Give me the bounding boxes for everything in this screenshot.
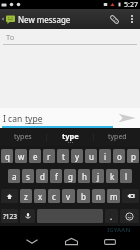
staticText: I can [3,113,25,125]
button[interactable]: . [105,209,118,223]
staticText: x [38,191,43,202]
button[interactable]: i [99,149,111,163]
staticText: To [6,32,15,42]
button[interactable]: f [50,169,62,183]
staticText: y [75,151,80,162]
staticText: w [18,151,25,162]
staticText: g [68,171,73,182]
staticText: c [52,191,56,202]
staticText: q [5,151,10,162]
staticText: a [12,171,17,182]
staticText: ?123 [3,212,17,221]
button[interactable]: b [77,189,90,203]
button[interactable]: e [29,149,41,163]
staticText: e [33,151,38,162]
button[interactable]: ?123 [1,209,18,223]
button[interactable]: x [34,189,46,203]
staticText: New message [18,14,71,25]
staticText: f [55,171,58,182]
button[interactable] [0,9,18,29]
button[interactable]: u [85,149,97,163]
button[interactable]: v [62,189,75,203]
button[interactable]: t [57,149,69,163]
button[interactable]: a [8,169,20,183]
button[interactable]: Send [113,108,140,128]
staticText: z [24,191,28,202]
staticText: types [14,132,32,142]
staticText: h [82,171,87,182]
staticText: . [110,211,113,222]
staticText: v [66,191,71,202]
button[interactable]: p [127,149,139,163]
button[interactable]: typed [94,128,140,146]
staticText: typed [108,132,127,142]
staticText: i [104,151,107,162]
staticText: r [47,151,51,162]
staticText: j [97,171,100,182]
staticText: t [62,151,65,162]
button[interactable]: y [71,149,83,163]
staticText: m [110,191,118,202]
button[interactable]: w [15,149,27,163]
staticText: d [40,171,45,182]
button[interactable]: l [120,169,132,183]
button[interactable]: k [106,169,118,183]
staticText: k [110,171,115,182]
staticText: s [26,171,30,182]
staticText: p [131,151,136,162]
button[interactable]: To [0,29,140,44]
button[interactable]: g [64,169,76,183]
staticText: l [125,171,128,182]
button[interactable]: m [107,189,120,203]
staticText: type [25,113,43,125]
staticText: n [96,191,101,202]
button[interactable]: z [20,189,32,203]
button[interactable]: Attach [105,9,123,29]
staticText: b [81,191,86,202]
button[interactable]: r [43,149,55,163]
button[interactable]: n [92,189,105,203]
button[interactable]: j [92,169,104,183]
button[interactable]: Back [0,226,52,250]
staticText: type [62,131,79,141]
button[interactable]: h [78,169,90,183]
button[interactable]: d [36,169,48,183]
button[interactable]: Voice input [20,209,35,223]
button[interactable]: o [113,149,125,163]
button[interactable]: s [22,169,34,183]
staticText: IGYAAN [107,226,131,234]
button[interactable]: I can [0,108,113,126]
button[interactable]: Home [52,226,90,250]
button[interactable]: Recents [90,226,140,250]
button[interactable]: More options [123,9,140,29]
staticText: 5:27 [124,0,138,9]
staticText: u [89,151,94,162]
button[interactable]: c [48,189,60,203]
button[interactable]: Emoji [120,209,139,223]
staticText: o [117,151,122,162]
button[interactable]: type [47,128,93,146]
button[interactable]: types [0,128,46,146]
button[interactable]: Delete [122,189,139,203]
button[interactable]: q [1,149,13,163]
button[interactable]: Shift [1,189,18,203]
